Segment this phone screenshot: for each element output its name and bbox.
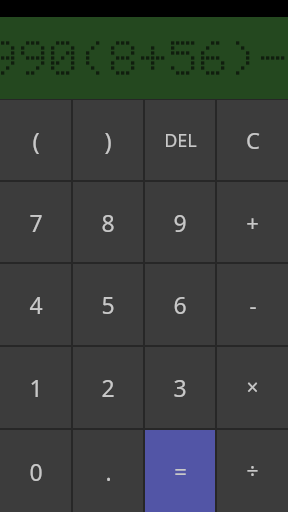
button[interactable]: Divide <box>217 430 288 512</box>
staticText: . <box>105 456 112 487</box>
staticText: - <box>249 290 257 320</box>
staticText: 6 <box>173 289 187 320</box>
button[interactable]: 6 <box>145 264 215 345</box>
button[interactable]: Equals <box>145 430 215 512</box>
staticText: 1 <box>29 372 43 403</box>
staticText: 5 <box>101 289 115 320</box>
staticText: 2 <box>101 372 115 403</box>
button[interactable]: C <box>217 100 288 180</box>
button[interactable]: 9 <box>145 182 215 262</box>
staticText: ÷ <box>246 457 259 486</box>
button[interactable]: 2 <box>73 347 143 428</box>
button[interactable]: 8 <box>73 182 143 262</box>
button[interactable]: Decimal point <box>73 430 143 512</box>
button[interactable]: 4 <box>0 264 71 345</box>
staticText: × <box>246 373 259 402</box>
staticText: + <box>246 207 259 237</box>
staticText: ) <box>104 124 112 157</box>
staticText: 4 <box>29 289 43 320</box>
button[interactable]: Open parenthesis <box>0 100 71 180</box>
button[interactable]: Plus <box>217 182 288 262</box>
staticText: 7 <box>29 207 43 238</box>
staticText: C <box>246 125 260 155</box>
staticText: 8 <box>101 207 115 238</box>
button[interactable]: 3 <box>145 347 215 428</box>
staticText: 3 <box>173 372 187 403</box>
staticText: DEL <box>164 128 197 153</box>
button[interactable]: 5 <box>73 264 143 345</box>
button[interactable]: Minus <box>217 264 288 345</box>
button[interactable]: 7 <box>0 182 71 262</box>
staticText: 0 <box>29 456 43 487</box>
button[interactable]: 1 <box>0 347 71 428</box>
button[interactable]: Close parenthesis <box>73 100 143 180</box>
staticText: ( <box>32 124 40 157</box>
button[interactable]: Multiply <box>217 347 288 428</box>
button[interactable]: 0 <box>0 430 71 512</box>
staticText: = <box>174 456 187 486</box>
staticText: 9 <box>173 207 187 238</box>
button[interactable]: DEL <box>145 100 215 180</box>
